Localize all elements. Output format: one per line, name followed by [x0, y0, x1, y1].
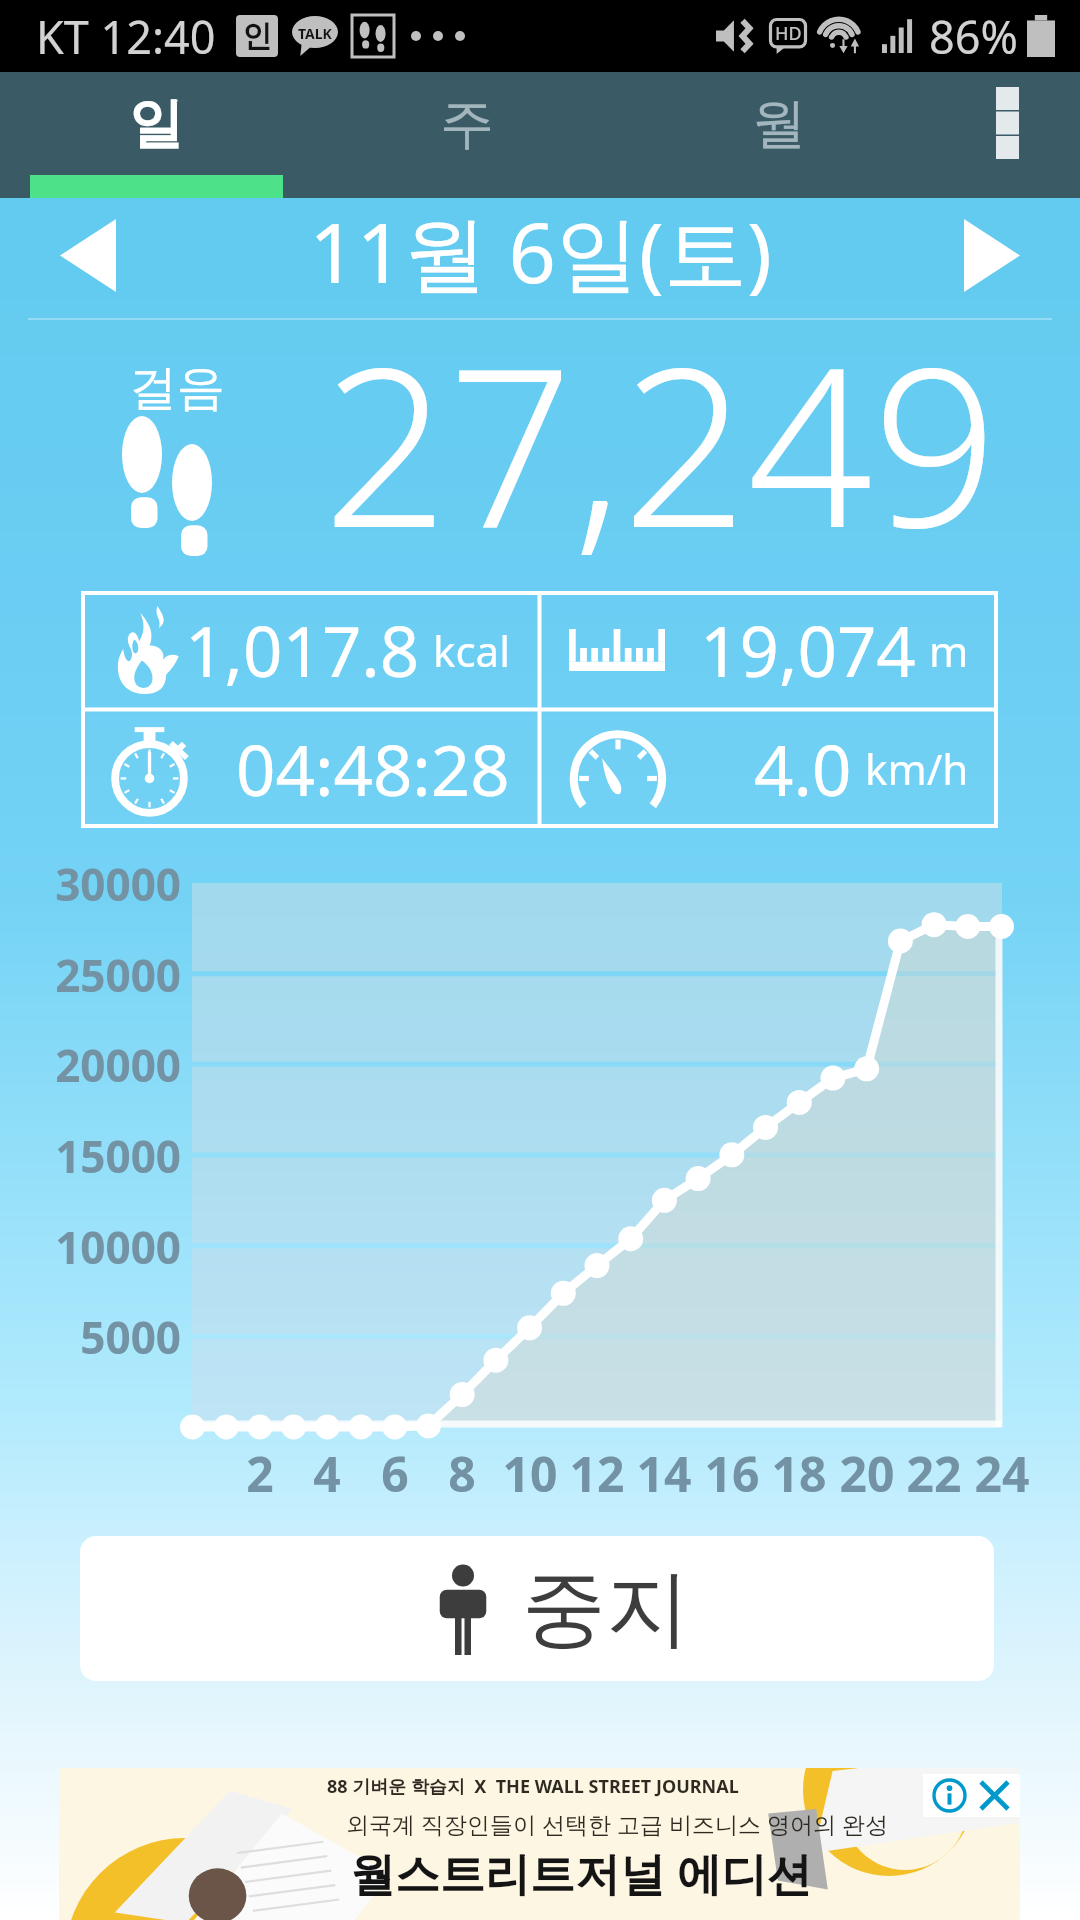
- button[interactable]: 4.0: [539, 709, 998, 828]
- staticText: KT 12:40: [36, 6, 216, 67]
- staticText: 6: [350, 1441, 440, 1506]
- staticText: HD: [775, 21, 802, 46]
- button[interactable]: 월: [623, 72, 935, 198]
- staticText: TALK: [298, 24, 332, 43]
- button[interactable]: 일: [0, 72, 311, 198]
- button[interactable]: Next day: [902, 198, 1080, 320]
- button[interactable]: 1,017.8: [81, 591, 539, 709]
- staticText: 1,017.8: [185, 603, 420, 697]
- staticText: 일: [129, 90, 183, 158]
- staticText: 88 기벼운 학습지 X THE WALL STREET JOURNAL: [327, 1774, 739, 1799]
- staticText: 19,074: [700, 603, 916, 697]
- staticText: 15000: [21, 1126, 181, 1186]
- staticText: 24: [957, 1441, 1047, 1506]
- staticText: 11월 6일(토): [309, 194, 772, 307]
- staticText: 18: [754, 1441, 844, 1506]
- staticText: 월스트리트저널 에디션: [350, 1842, 812, 1903]
- staticText: 22: [889, 1441, 979, 1506]
- staticText: 20000: [21, 1035, 181, 1095]
- staticText: 5000: [21, 1307, 181, 1367]
- staticText: 주: [440, 90, 494, 158]
- staticText: 중지: [522, 1556, 690, 1662]
- staticText: 25000: [21, 945, 181, 1005]
- staticText: 8: [417, 1441, 507, 1506]
- staticText: 10000: [21, 1217, 181, 1277]
- staticText: 4.0: [754, 722, 852, 816]
- staticText: m: [929, 622, 969, 679]
- staticText: 16: [687, 1441, 777, 1506]
- staticText: 27,249: [323, 293, 998, 591]
- staticText: 인: [242, 17, 272, 55]
- staticText: 30000: [21, 854, 181, 914]
- button[interactable]: 주: [311, 72, 623, 198]
- staticText: 14: [619, 1441, 709, 1506]
- staticText: 04:48:28: [236, 722, 510, 816]
- staticText: 월: [752, 90, 806, 158]
- staticText: 걸음: [129, 358, 225, 418]
- button[interactable]: Ad options: [932, 1778, 1011, 1813]
- staticText: kcal: [433, 622, 510, 679]
- button[interactable]: More options: [935, 72, 1080, 198]
- staticText: 12: [552, 1441, 642, 1506]
- staticText: 10: [485, 1441, 575, 1506]
- staticText: 4: [282, 1441, 372, 1506]
- button[interactable]: 19,074: [539, 591, 998, 709]
- staticText: km/h: [865, 740, 969, 797]
- staticText: 2: [215, 1441, 305, 1506]
- button[interactable]: 중지: [80, 1536, 994, 1681]
- staticText: 외국계 직장인들이 선택한 고급 비즈니스 영어의 완성: [346, 1808, 888, 1839]
- staticText: 86%: [929, 6, 1018, 67]
- button[interactable]: 04:48:28: [81, 709, 539, 828]
- button[interactable]: Previous day: [0, 198, 178, 320]
- staticText: 20: [822, 1441, 912, 1506]
- button[interactable]: 88 기벼운 학습지 X THE WALL STREET JOURNAL: [59, 1768, 1020, 1920]
